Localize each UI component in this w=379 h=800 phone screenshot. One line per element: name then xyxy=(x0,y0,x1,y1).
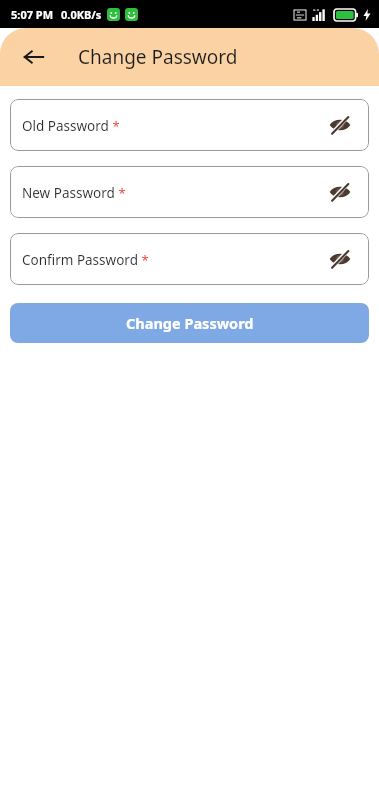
staticText: 0.0KB/s xyxy=(61,7,102,22)
button[interactable]: Change Password xyxy=(10,303,369,343)
staticText: Change Password xyxy=(78,44,238,70)
button[interactable]: Show password xyxy=(323,175,357,209)
staticText: New Password * xyxy=(22,183,126,202)
staticText: Change Password xyxy=(126,313,254,333)
button[interactable]: Confirm Password * xyxy=(10,233,369,285)
staticText: Old Password * xyxy=(22,116,120,135)
button[interactable]: Show password xyxy=(323,242,357,276)
staticText: Confirm Password * xyxy=(22,250,149,269)
button[interactable]: Show password xyxy=(323,108,357,142)
staticText: 5:07 PM xyxy=(11,7,54,22)
button[interactable]: New Password * xyxy=(10,166,369,218)
button[interactable]: Back xyxy=(14,37,54,77)
button[interactable]: Old Password * xyxy=(10,99,369,151)
